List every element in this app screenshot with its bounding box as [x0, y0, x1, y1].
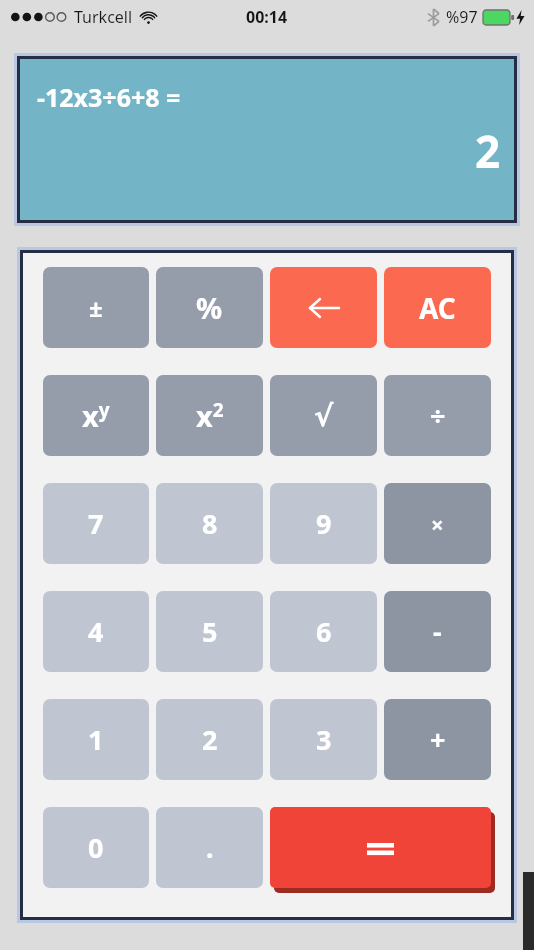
- button[interactable]: xy: [43, 375, 149, 456]
- staticText: %: [196, 288, 223, 327]
- button[interactable]: √: [270, 375, 377, 456]
- staticText: ×: [431, 509, 444, 539]
- staticText: 3: [316, 721, 332, 758]
- button[interactable]: 4: [43, 591, 149, 672]
- staticText: 8: [202, 505, 218, 542]
- staticText: -12x3÷6+8 =: [37, 80, 181, 114]
- button[interactable]: AC: [384, 267, 491, 348]
- button[interactable]: Equals: [270, 807, 491, 888]
- staticText: +: [430, 721, 446, 758]
- staticText: ±: [89, 291, 103, 324]
- button[interactable]: 2: [156, 699, 263, 780]
- staticText: √: [314, 399, 334, 433]
- button[interactable]: 7: [43, 483, 149, 564]
- staticText: 9: [316, 505, 332, 542]
- staticText: 00:14: [246, 6, 288, 28]
- staticText: 1: [88, 721, 104, 758]
- button[interactable]: Backspace: [270, 267, 377, 348]
- staticText: 2: [475, 121, 501, 181]
- staticText: 5: [202, 613, 218, 650]
- button[interactable]: +: [384, 699, 491, 780]
- staticText: .: [206, 829, 214, 866]
- staticText: 0: [88, 829, 104, 866]
- button[interactable]: 8: [156, 483, 263, 564]
- button[interactable]: 0: [43, 807, 149, 888]
- staticText: AC: [419, 289, 456, 327]
- staticText: x2: [196, 396, 224, 435]
- staticText: ÷: [430, 397, 446, 434]
- button[interactable]: ×: [384, 483, 491, 564]
- staticText: 7: [88, 505, 104, 542]
- staticText: -: [433, 613, 442, 650]
- button[interactable]: 9: [270, 483, 377, 564]
- button[interactable]: -: [384, 591, 491, 672]
- button[interactable]: 1: [43, 699, 149, 780]
- staticText: 6: [316, 613, 332, 650]
- staticText: Turkcell: [74, 6, 133, 28]
- staticText: xy: [82, 396, 110, 435]
- staticText: 2: [202, 721, 218, 758]
- button[interactable]: 6: [270, 591, 377, 672]
- button[interactable]: ÷: [384, 375, 491, 456]
- button[interactable]: ±: [43, 267, 149, 348]
- button[interactable]: .: [156, 807, 263, 888]
- button[interactable]: 5: [156, 591, 263, 672]
- staticText: 4: [88, 613, 104, 650]
- button[interactable]: x2: [156, 375, 263, 456]
- staticText: %97: [446, 6, 478, 28]
- button[interactable]: 3: [270, 699, 377, 780]
- button[interactable]: %: [156, 267, 263, 348]
